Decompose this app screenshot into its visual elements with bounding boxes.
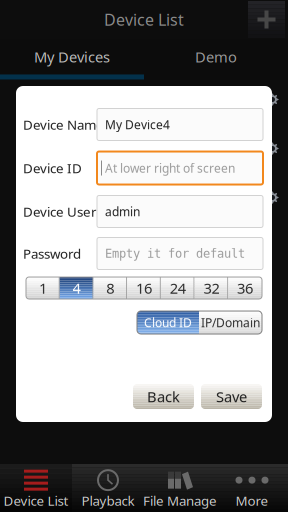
button[interactable]: File Manage (144, 464, 216, 512)
button[interactable]: 32 (195, 277, 228, 299)
staticText: Back (147, 387, 180, 406)
staticText: 24 (170, 278, 186, 298)
button[interactable]: 8 (93, 277, 127, 299)
button[interactable]: Save (201, 384, 262, 409)
staticText: Password (23, 245, 81, 262)
staticText: Playback (81, 492, 134, 509)
button[interactable]: 16 (127, 277, 161, 299)
staticText: 8 (106, 278, 114, 298)
staticText: File Manage (143, 492, 217, 509)
staticText: IP/Domain (201, 314, 260, 330)
staticText: 36 (237, 278, 253, 298)
staticText: Demo (195, 47, 237, 66)
staticText: 1 (39, 278, 47, 298)
staticText: Device User (23, 203, 97, 220)
button[interactable]: My Devices (0, 39, 144, 80)
staticText: At lower right of screen (105, 160, 235, 176)
staticText: Cloud ID (144, 314, 192, 330)
staticText: admin (105, 203, 140, 219)
button[interactable]: Playback (72, 464, 144, 512)
button[interactable]: Add device (248, 1, 285, 38)
staticText: Device List (3, 492, 68, 509)
staticText: 16 (136, 278, 152, 298)
button[interactable]: IP/Domain (199, 311, 262, 334)
button[interactable]: 4 (60, 277, 93, 299)
staticText: Device List (104, 9, 184, 30)
button[interactable]: Back (133, 384, 194, 409)
button[interactable]: More (216, 464, 288, 512)
staticText: Device ID (23, 159, 82, 177)
button[interactable]: 24 (161, 277, 195, 299)
staticText: Device Name (23, 116, 104, 133)
staticText: My Devices (34, 47, 110, 66)
staticText: My Device4 (105, 116, 170, 132)
button[interactable]: Device List (0, 464, 72, 512)
button[interactable]: Demo (144, 39, 288, 80)
staticText: 4 (73, 278, 81, 298)
staticText: Empty it for default (105, 247, 245, 260)
staticText: Save (216, 387, 247, 406)
staticText: 32 (203, 278, 219, 298)
button[interactable]: 1 (26, 277, 60, 299)
staticText: More (235, 492, 268, 509)
button[interactable]: Cloud ID (137, 311, 199, 334)
button[interactable]: 36 (228, 277, 262, 299)
